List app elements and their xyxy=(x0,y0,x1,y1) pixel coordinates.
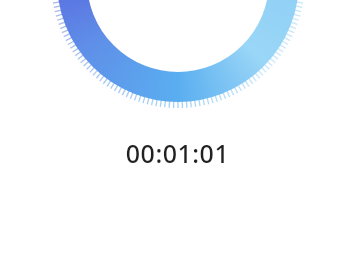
button[interactable]: Timer progress ring xyxy=(0,0,355,266)
button[interactable]: 00:01:01 xyxy=(0,136,355,266)
